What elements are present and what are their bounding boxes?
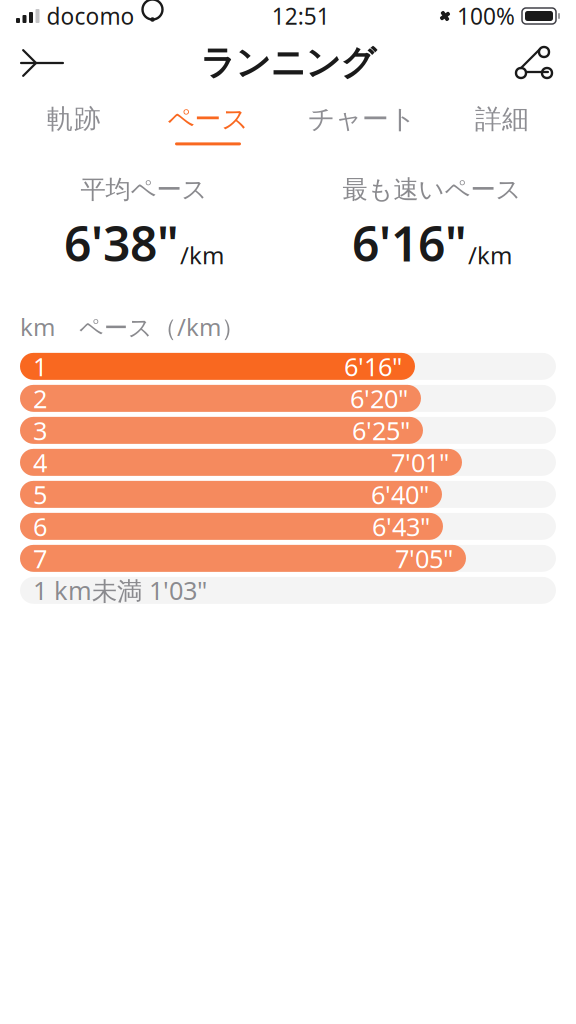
staticText: 100% [457,1,515,31]
staticText: 詳細 [475,103,529,135]
button[interactable]: 戻る [16,43,68,83]
button[interactable]: 詳細 [442,96,562,152]
staticText: 5 [33,477,47,511]
staticText: ペース [167,103,248,135]
staticText: docomo [46,1,134,31]
staticText: 2 [33,381,47,415]
staticText: km ペース（/km） [20,311,245,343]
staticText: 6'40" [371,477,429,511]
staticText: 6'25" [352,413,410,447]
staticText: 7'05" [395,541,453,575]
staticText: 軌跡 [47,103,101,135]
staticText: 6'20" [350,381,408,415]
staticText: チャート [308,103,416,135]
staticText: 12:51 [272,1,330,31]
staticText: /km [468,239,512,271]
button[interactable]: ペース [134,96,282,152]
staticText: 7'01" [391,445,449,479]
staticText: 6'38" [64,211,179,275]
staticText: 平均ペース [80,174,207,205]
staticText: 7 [33,541,47,575]
button[interactable]: 軌跡 [14,96,134,152]
staticText: 6 [33,509,47,543]
staticText: 4 [33,445,47,479]
staticText: 3 [33,413,47,447]
button[interactable]: 共有 [508,41,560,85]
staticText: 1 km未満 1'03" [33,573,207,607]
staticText: 6'43" [372,509,430,543]
staticText: /km [180,239,224,271]
staticText: 最も速いペース [342,174,521,205]
staticText: ランニング [200,42,375,84]
staticText: 6'16" [352,211,467,275]
button[interactable]: チャート [282,96,442,152]
staticText: 1 [33,349,47,383]
staticText: 6'16" [344,349,402,383]
